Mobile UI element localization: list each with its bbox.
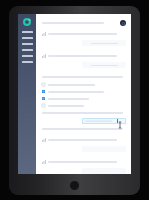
- button[interactable]: Account: [120, 20, 126, 26]
- button[interactable]: [42, 89, 126, 94]
- button[interactable]: [42, 103, 126, 108]
- button[interactable]: App logo: [23, 18, 31, 26]
- button[interactable]: Menu item: [22, 61, 33, 63]
- button[interactable]: Home: [70, 181, 79, 190]
- button[interactable]: Input field: [82, 40, 126, 46]
- button[interactable]: Menu item: [22, 31, 33, 33]
- button[interactable]: Focused text field: [82, 118, 126, 124]
- button[interactable]: Menu item: [22, 55, 33, 57]
- button[interactable]: Menu item: [22, 43, 33, 45]
- button[interactable]: Menu item: [22, 37, 33, 39]
- button[interactable]: Input field: [82, 62, 126, 68]
- button[interactable]: [42, 96, 126, 101]
- button[interactable]: Menu item: [22, 49, 33, 51]
- button[interactable]: [42, 82, 126, 87]
